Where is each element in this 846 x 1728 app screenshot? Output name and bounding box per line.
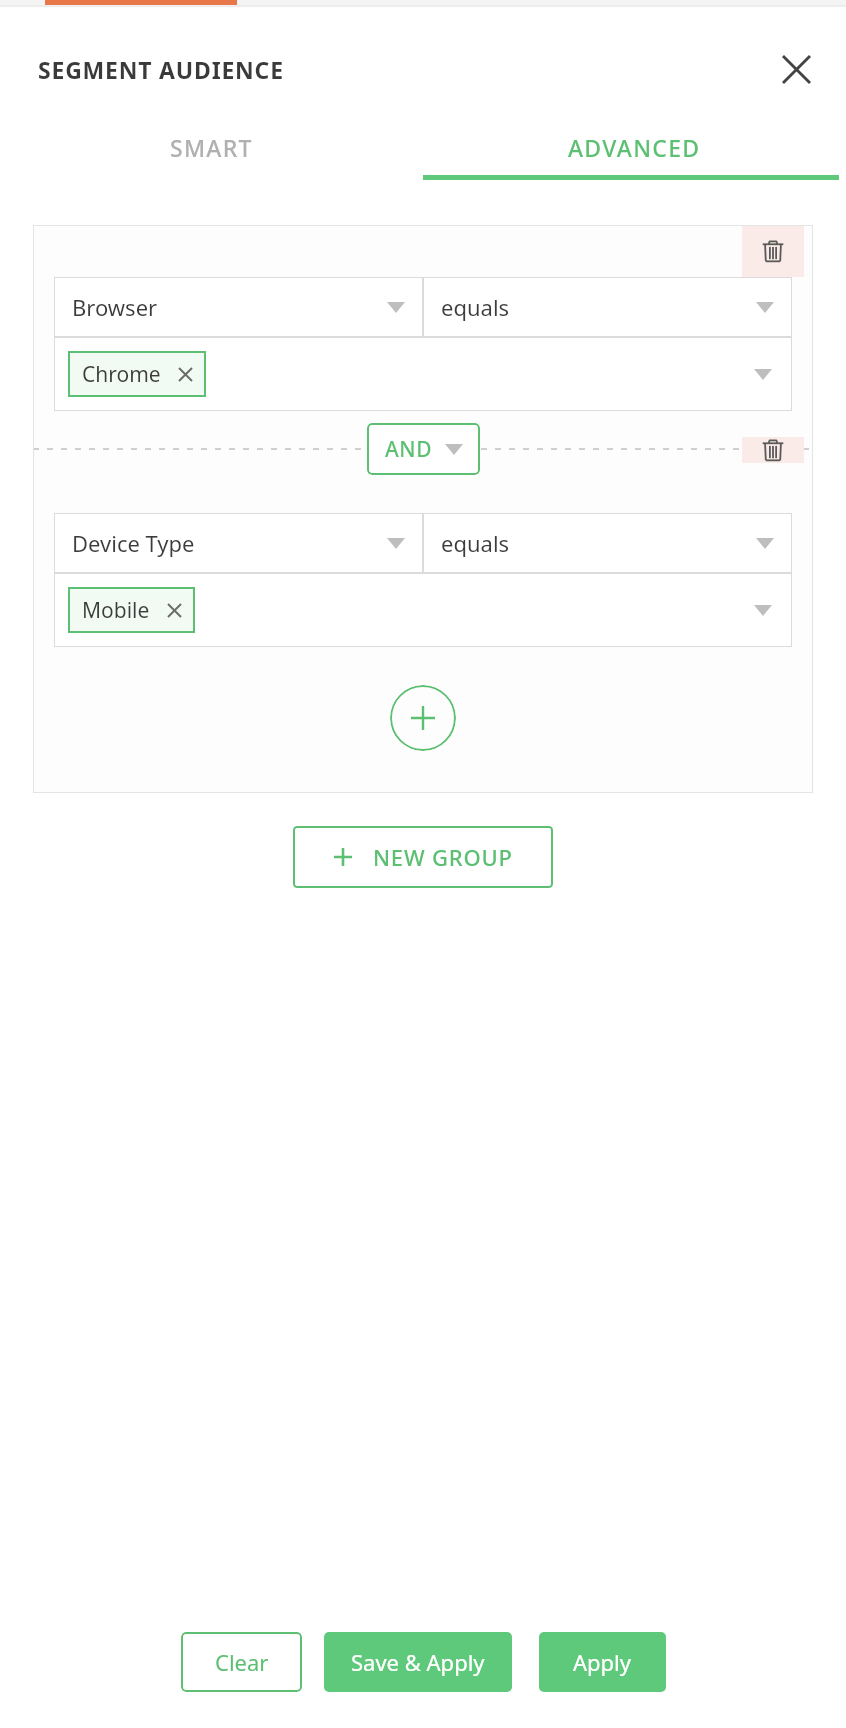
staticText: Device Type [72,528,195,558]
staticText: Browser [72,292,158,322]
staticText: equals [441,528,510,558]
button[interactable]: Apply [539,1632,666,1692]
button[interactable]: Mobile [54,573,792,647]
button[interactable]: Clear [181,1632,302,1692]
button[interactable]: Browser [54,277,423,337]
staticText: equals [441,292,510,322]
button[interactable]: equals [423,513,792,573]
button[interactable]: Mobile [82,587,181,633]
button[interactable]: ADVANCED [423,119,846,175]
button[interactable]: Close [772,45,820,93]
staticText: AND [385,435,433,464]
staticText: ADVANCED [568,132,701,163]
staticText: SMART [170,132,253,163]
button[interactable]: NEW GROUP [293,826,553,888]
staticText: Save & Apply [351,1647,485,1677]
button[interactable]: Save & Apply [324,1632,512,1692]
staticText: SEGMENT AUDIENCE [38,54,284,85]
button[interactable]: Chrome [54,337,792,411]
button[interactable]: Chrome [82,351,192,397]
button[interactable]: AND [367,423,480,475]
staticText: Chrome [82,360,161,389]
staticText: Apply [573,1647,632,1677]
button[interactable]: SMART [0,119,423,175]
button[interactable]: Device Type [54,513,423,573]
button[interactable]: Delete condition [742,437,804,463]
button[interactable]: equals [423,277,792,337]
button[interactable]: Add condition [390,685,456,751]
staticText: Clear [215,1647,269,1677]
button[interactable]: Delete condition [742,225,804,277]
staticText: NEW GROUP [373,842,513,872]
staticText: Mobile [82,596,150,625]
